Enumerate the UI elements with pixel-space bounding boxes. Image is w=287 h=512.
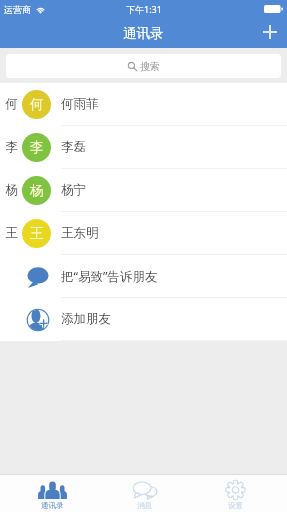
staticText: 李磊 (61, 139, 86, 155)
button[interactable]: Add contact (251, 18, 287, 48)
staticText: 添加朋友 (61, 311, 111, 327)
button[interactable]: 把“易致”告诉朋友 (0, 255, 287, 298)
button[interactable]: 通讯录 (12, 481, 92, 510)
button[interactable]: 王 (0, 212, 287, 255)
button[interactable]: 设置 (195, 481, 275, 510)
staticText: 王 (5, 225, 18, 241)
staticText: 杨 (30, 182, 44, 199)
staticText: 何 (5, 96, 18, 112)
staticText: 下午1:31 (126, 3, 162, 15)
button[interactable]: 添加朋友 (0, 298, 287, 341)
staticText: 设置 (228, 501, 243, 510)
button[interactable]: 李 (0, 126, 287, 169)
staticText: 李 (5, 139, 18, 155)
staticText: 何 (30, 96, 44, 113)
button[interactable]: 何 (0, 83, 287, 126)
staticText: 王东明 (61, 225, 99, 241)
button[interactable]: 搜索 (6, 54, 281, 78)
staticText: 把“易致”告诉朋友 (61, 268, 158, 285)
button[interactable]: 杨 (0, 169, 287, 212)
staticText: 运营商 (4, 4, 31, 15)
staticText: 消息 (137, 501, 152, 510)
staticText: 通讯录 (123, 25, 164, 42)
button[interactable]: 消息 (104, 481, 184, 510)
staticText: 杨 (5, 182, 18, 198)
staticText: 搜索 (140, 60, 160, 73)
staticText: 李 (30, 139, 44, 156)
staticText: 何雨菲 (61, 96, 99, 112)
staticText: 通讯录 (41, 501, 64, 510)
staticText: 杨宁 (61, 182, 86, 198)
staticText: 王 (30, 225, 44, 242)
